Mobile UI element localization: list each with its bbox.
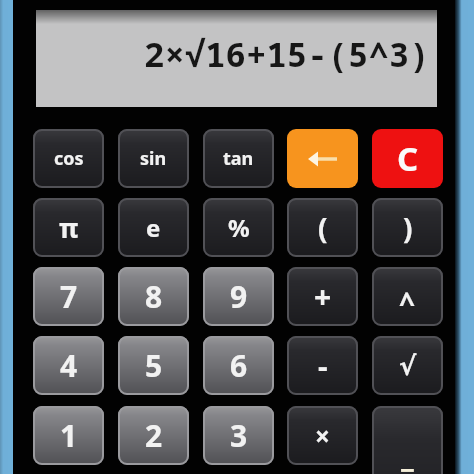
staticText: e: [146, 211, 161, 244]
button[interactable]: 3: [203, 406, 274, 465]
button[interactable]: e: [118, 198, 189, 257]
button[interactable]: +: [287, 267, 358, 326]
button[interactable]: 4: [33, 336, 104, 395]
staticText: 2: [145, 415, 163, 456]
button[interactable]: π: [33, 198, 104, 257]
button[interactable]: C: [372, 129, 443, 188]
button[interactable]: 5: [118, 336, 189, 395]
staticText: +: [314, 276, 332, 317]
staticText: ): [403, 209, 413, 247]
staticText: 5: [145, 345, 163, 386]
button[interactable]: 6: [203, 336, 274, 395]
button[interactable]: √: [372, 336, 443, 395]
button[interactable]: -: [287, 336, 358, 395]
staticText: 7: [60, 276, 78, 317]
staticText: 9: [230, 276, 248, 317]
staticText: 4: [60, 345, 78, 386]
button[interactable]: (: [287, 198, 358, 257]
button[interactable]: =: [372, 406, 443, 474]
staticText: (: [318, 209, 328, 247]
button[interactable]: 7: [33, 267, 104, 326]
staticText: cos: [54, 146, 84, 171]
staticText: 8: [145, 276, 163, 317]
staticText: sin: [140, 146, 167, 171]
staticText: 3: [230, 415, 248, 456]
staticText: 6: [230, 345, 248, 386]
button[interactable]: 2×√16+15-(5^3): [36, 10, 437, 107]
staticText: √: [399, 351, 417, 381]
staticText: 2×√16+15-(5^3): [144, 31, 430, 77]
button[interactable]: ^: [372, 267, 443, 326]
staticText: ×: [315, 418, 330, 453]
button[interactable]: 8: [118, 267, 189, 326]
staticText: C: [397, 136, 419, 181]
button[interactable]: sin: [118, 129, 189, 188]
button[interactable]: 2: [118, 406, 189, 465]
staticText: 1: [60, 415, 78, 456]
staticText: =: [400, 455, 415, 474]
button[interactable]: ): [372, 198, 443, 257]
staticText: ^: [399, 283, 416, 321]
button[interactable]: 1: [33, 406, 104, 465]
staticText: %: [228, 211, 250, 244]
staticText: π: [59, 210, 79, 245]
staticText: -: [318, 345, 328, 386]
staticText: tan: [223, 146, 254, 171]
button[interactable]: tan: [203, 129, 274, 188]
button[interactable]: cos: [33, 129, 104, 188]
button[interactable]: %: [203, 198, 274, 257]
button[interactable]: [287, 129, 358, 188]
button[interactable]: ×: [287, 406, 358, 465]
button[interactable]: 9: [203, 267, 274, 326]
